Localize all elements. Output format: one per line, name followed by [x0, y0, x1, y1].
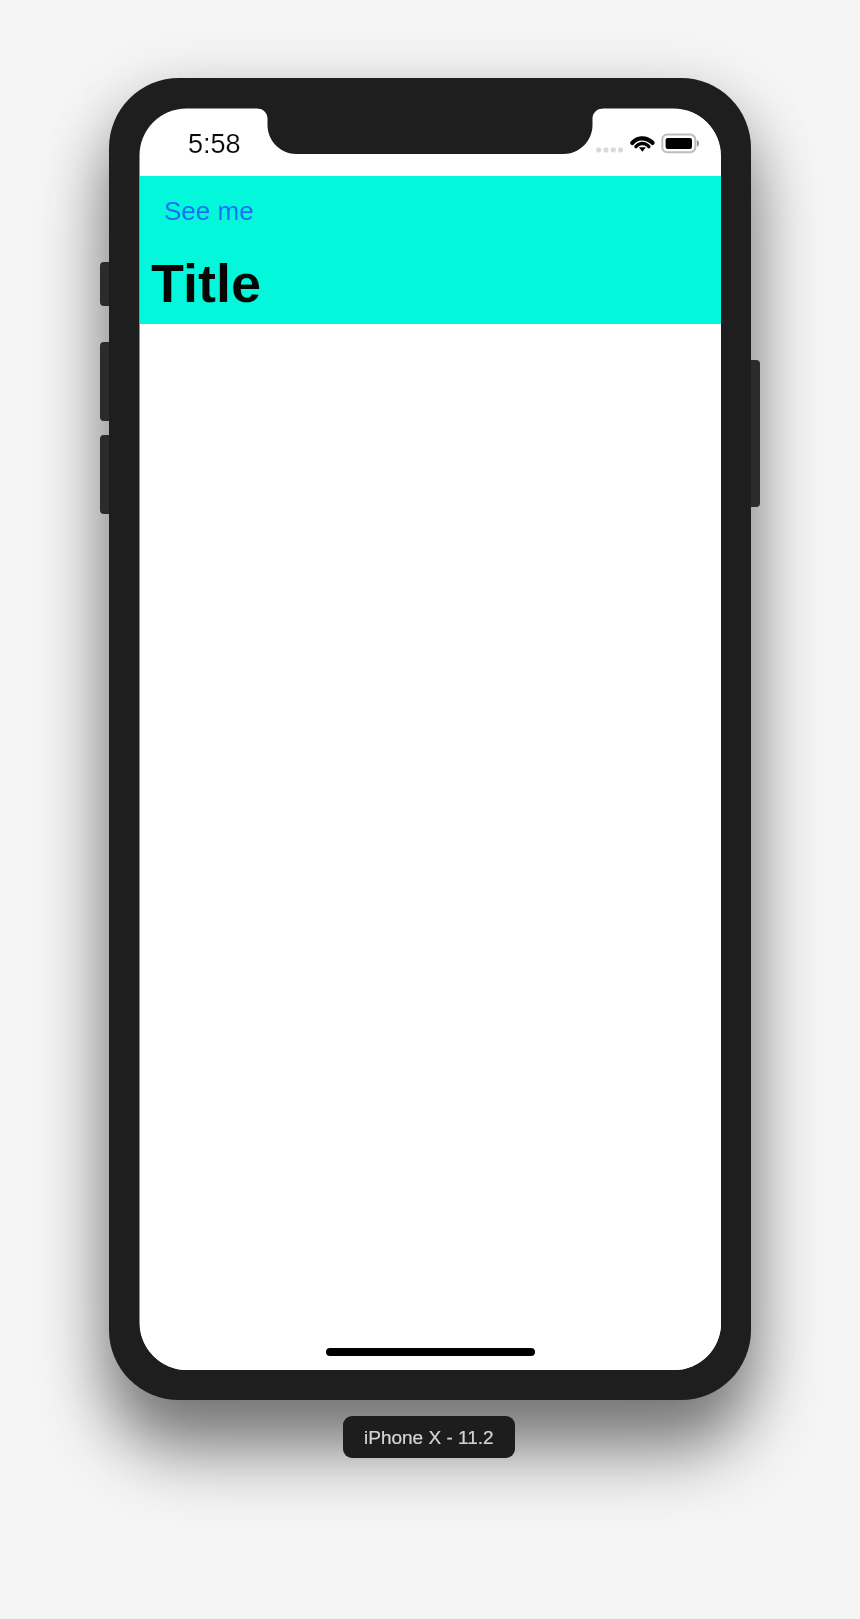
button[interactable]: iPhone X - 11.2 [343, 1416, 515, 1458]
staticText: See me [164, 196, 254, 225]
other: Signal, Wi-Fi and battery status [140, 109, 721, 176]
button[interactable]: See me [150, 186, 268, 233]
staticText: 5:58 [188, 129, 241, 159]
other: Home indicator [326, 1348, 535, 1356]
staticText: iPhone X - 11.2 [364, 1427, 494, 1448]
staticText: Title [151, 253, 262, 313]
